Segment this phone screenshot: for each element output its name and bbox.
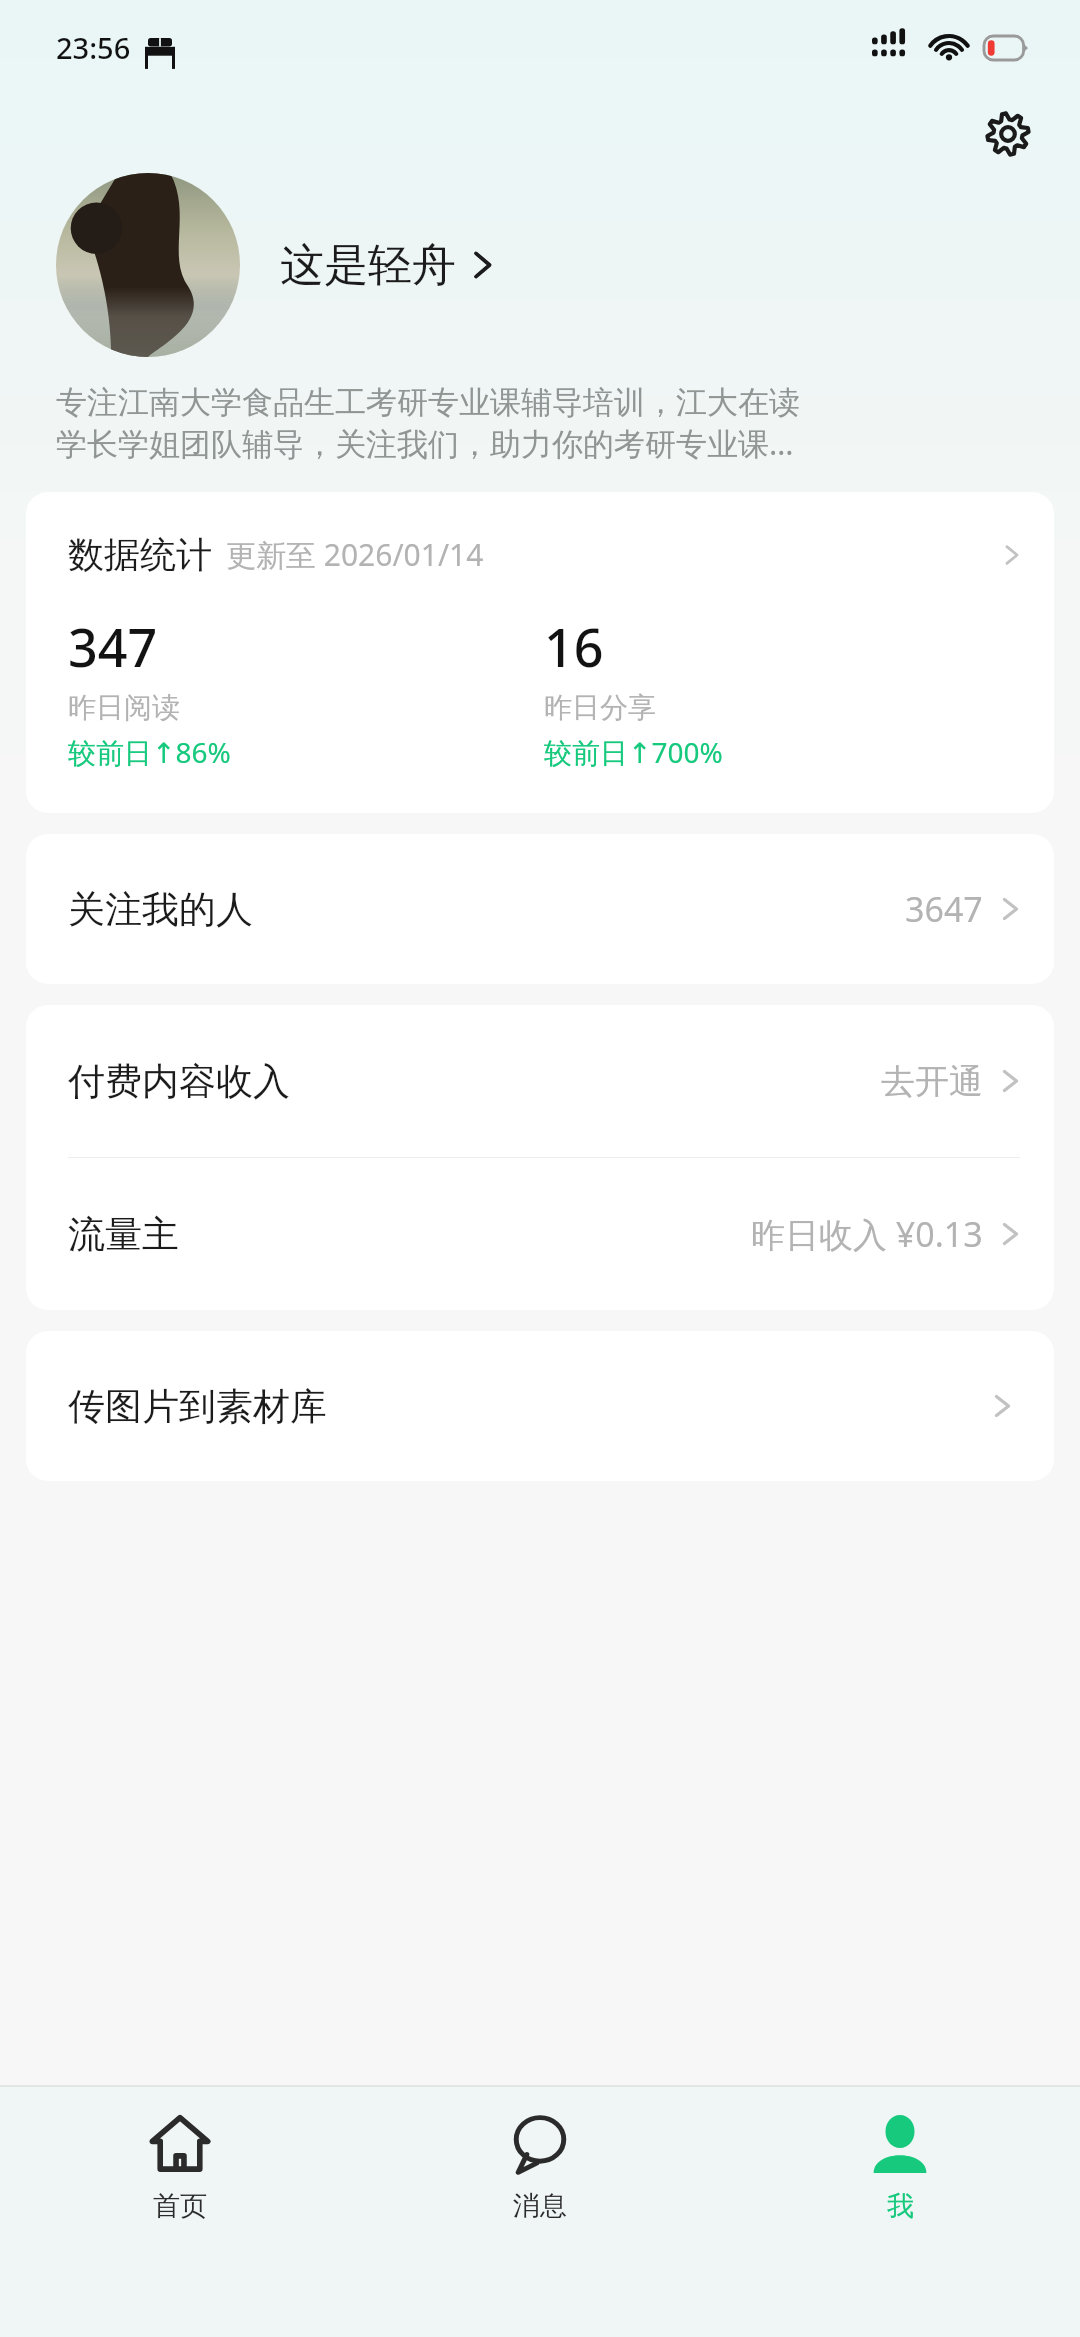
staticText: 首页 [153,2189,207,2223]
staticText: 较前日↑700% [544,733,723,771]
button[interactable]: 数据统计 [26,492,1054,813]
button[interactable]: 我 [720,2087,1080,2337]
button[interactable]: Settings [974,100,1042,168]
staticText: 数据统计 [68,532,212,577]
staticText: 昨日收入 ¥0.13 [751,1211,983,1257]
staticText: 付费内容收入 [68,1058,290,1105]
staticText: 3647 [905,886,983,932]
staticText: 传图片到素材库 [68,1383,327,1430]
staticText: 消息 [513,2189,567,2223]
button[interactable]: 首页 [0,2087,360,2337]
button[interactable]: 消息 [360,2087,720,2337]
staticText: 昨日阅读 [68,690,180,725]
staticText: 较前日↑86% [68,733,231,771]
staticText: 16 [544,611,604,682]
button[interactable]: 流量主 [26,1158,1054,1310]
staticText: 23:56 [56,28,131,67]
staticText: 流量主 [68,1211,179,1258]
button[interactable]: 关注我的人 [26,834,1054,984]
staticText: 昨日分享 [544,690,656,725]
staticText: 更新至 2026/01/14 [226,534,484,575]
button[interactable]: 传图片到素材库 [26,1331,1054,1481]
staticText: 学长学姐团队辅导，关注我们，助力你的考研专业课… [56,422,794,464]
staticText: 关注我的人 [68,886,253,933]
staticText: 去开通 [881,1060,983,1103]
staticText: 这是轻舟 [280,238,456,293]
staticText: 专注江南大学食品生工考研专业课辅导培训，江大在读 [56,383,800,422]
button[interactable]: 付费内容收入 [26,1005,1054,1157]
staticText: 我 [887,2189,914,2223]
staticText: 347 [68,611,158,682]
button[interactable]: 这是轻舟 [56,173,1040,357]
